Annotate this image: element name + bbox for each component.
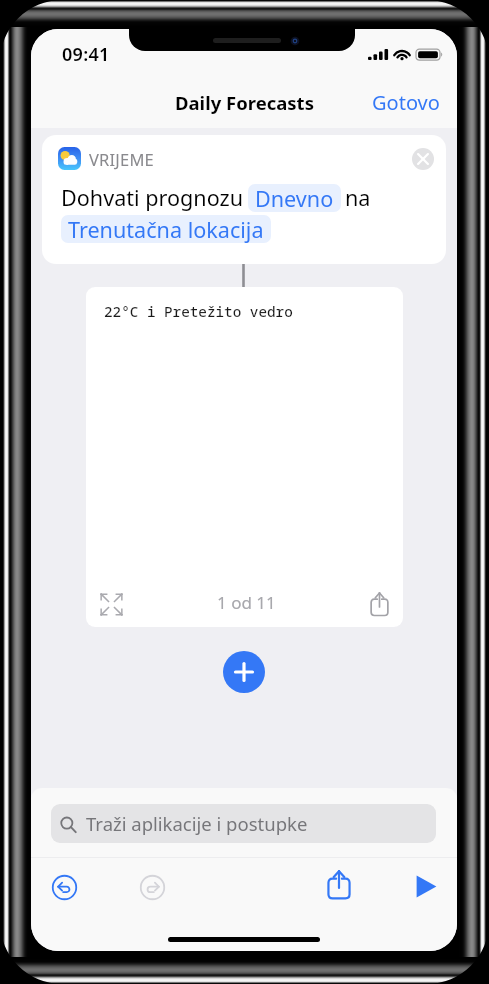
button[interactable]: Gotovo [358, 81, 457, 124]
button[interactable]: Add action [223, 651, 265, 693]
staticText: Dnevno [255, 184, 334, 212]
button[interactable]: Trenutačna lokacija [61, 215, 271, 243]
button[interactable]: Traži aplikacije i postupke [51, 804, 436, 843]
staticText: 22°C i Pretežito vedro [104, 302, 293, 321]
button[interactable]: Dnevno [248, 184, 341, 212]
button[interactable]: Close [412, 148, 434, 170]
button[interactable]: 22°C i Pretežito vedro [86, 287, 403, 627]
staticText: Trenutačna lokacija [68, 215, 264, 243]
staticText: Gotovo [372, 89, 440, 116]
button[interactable]: Undo [52, 875, 77, 900]
button[interactable]: Redo [140, 875, 165, 900]
staticText: 1 od 11 [217, 591, 276, 614]
staticText: na [345, 183, 371, 212]
button[interactable]: Share [327, 870, 351, 899]
staticText: VRIJEME [89, 148, 154, 170]
staticText: Dohvati prognozu [61, 183, 244, 212]
staticText: Daily Forecasts [175, 90, 314, 115]
staticText: Traži aplikacije i postupke [86, 811, 308, 836]
button[interactable]: Expand [100, 593, 123, 616]
button[interactable]: Share [370, 592, 389, 616]
button[interactable]: VRIJEME [42, 135, 446, 264]
button[interactable]: Play [416, 875, 437, 898]
staticText: 09:41 [62, 42, 110, 67]
